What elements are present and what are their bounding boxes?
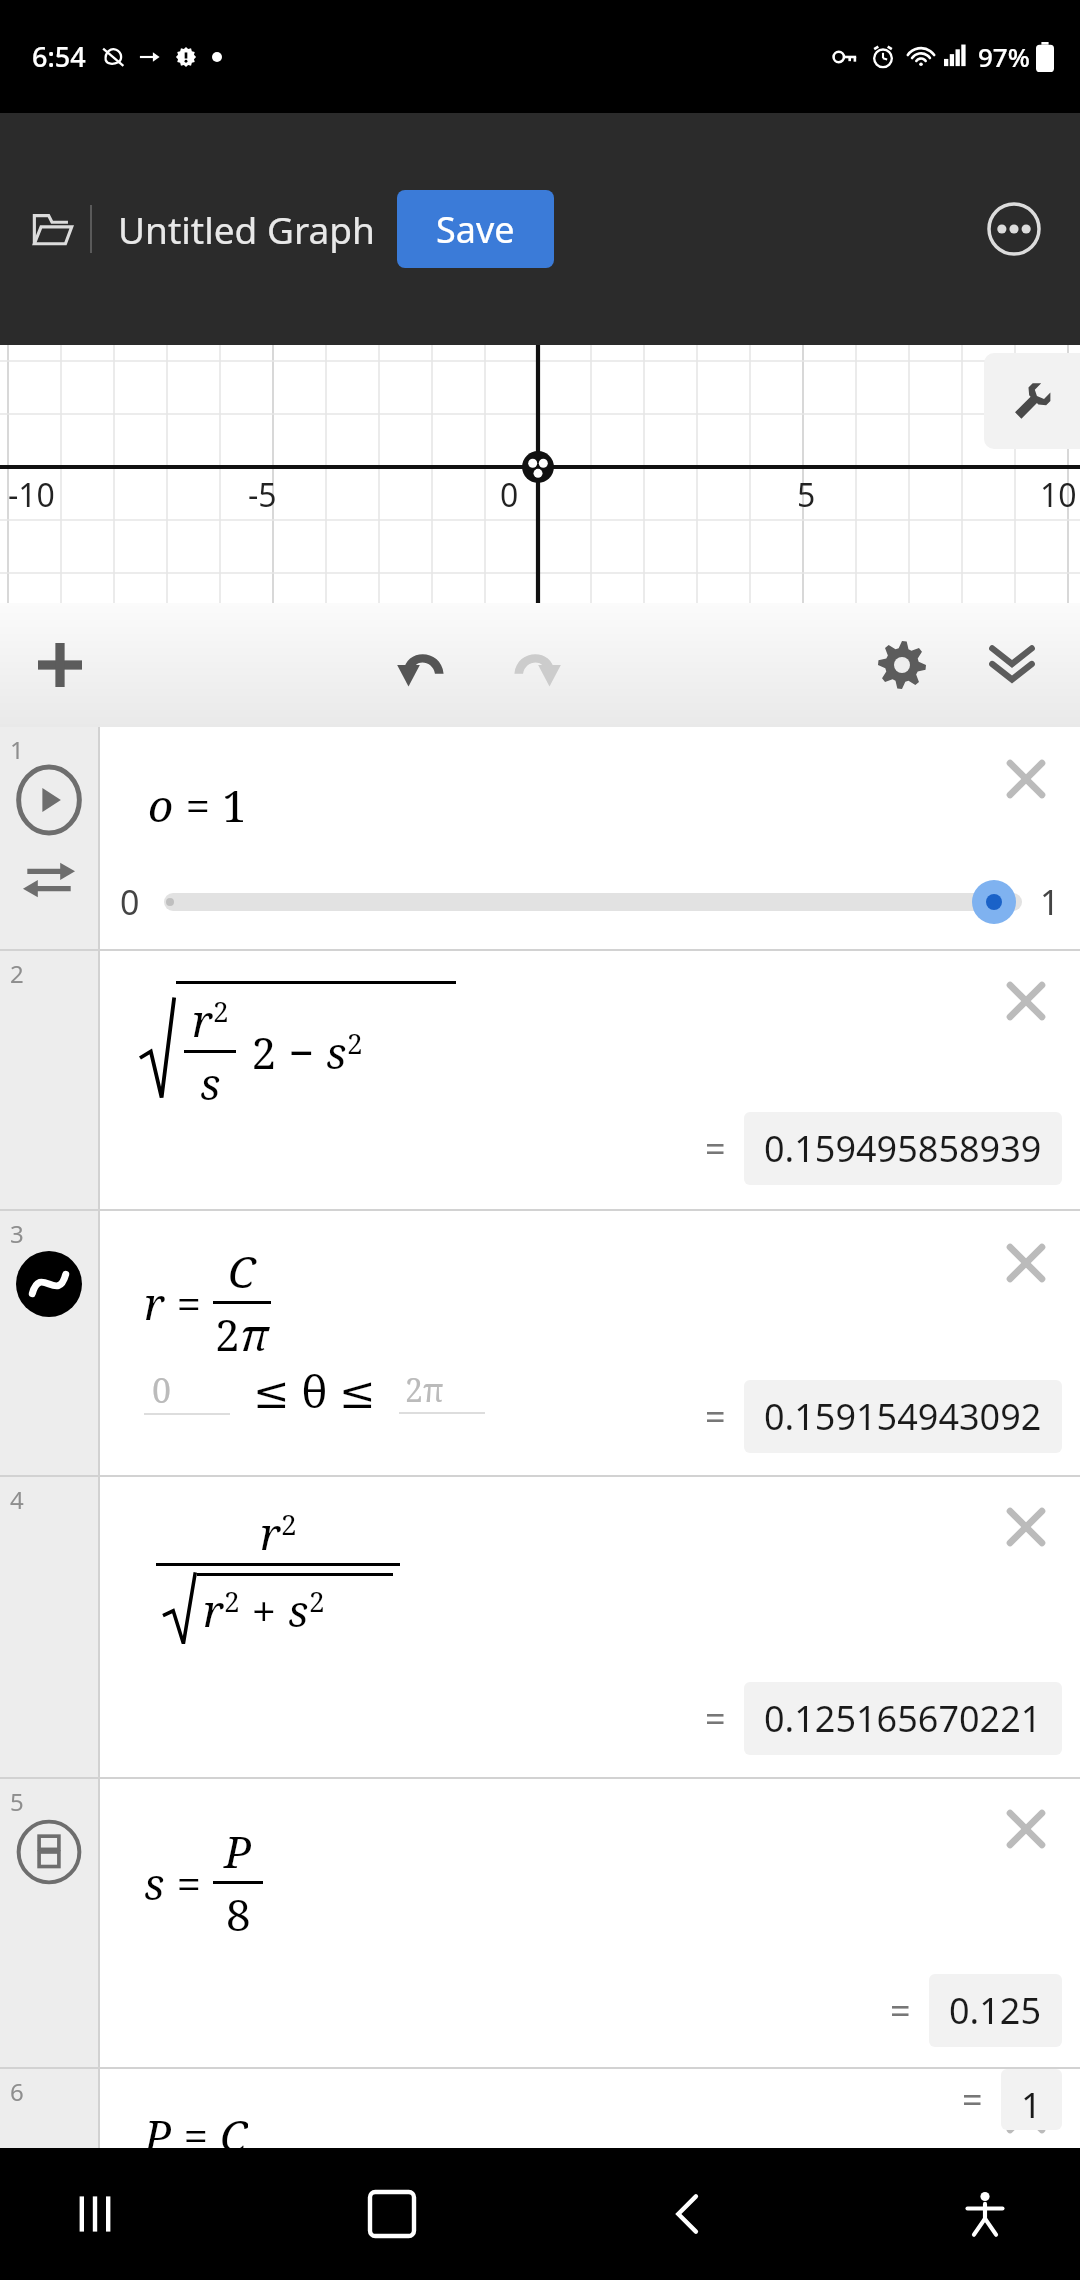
staticText: 0.125 [949,1986,1042,2035]
button[interactable]: Loop mode [18,849,80,911]
staticText: 0.125165670221 [764,1694,1042,1743]
button[interactable]: 0.125 [949,1986,1042,2035]
staticText: 1 [1040,879,1060,925]
button[interactable]: Home [337,2159,447,2269]
button[interactable]: Play animation [16,767,82,833]
staticText: 2π [405,1368,444,1412]
staticText: 2 [213,992,229,1030]
staticText: r [203,1580,224,1640]
staticText: 5 [797,473,816,517]
staticText: 10 [1040,473,1077,517]
button[interactable]: Delete expression [986,739,1066,819]
button[interactable]: Delete expression [986,1487,1066,1567]
button[interactable]: 3 [0,1211,1080,1475]
button[interactable]: Show graph [16,1251,82,1317]
staticText: 8 [226,1884,251,1944]
button[interactable]: 1 [0,727,1080,949]
staticText: 0 [120,879,140,925]
staticText: C [220,2105,248,2148]
staticText: 0 [152,1367,172,1413]
staticText: 2 [309,1582,325,1620]
button[interactable] [972,880,1016,924]
button[interactable]: Open folder [14,191,90,267]
staticText: 2 [215,1304,240,1364]
staticText: = [705,1392,726,1441]
staticText: 2 [281,1505,297,1543]
button[interactable]: Delete expression [986,1223,1066,1303]
button[interactable]: 0.125165670221 [764,1694,1042,1743]
staticText: π [240,1304,269,1364]
button[interactable]: Accessibility [930,2159,1040,2269]
button[interactable]: Delete expression [986,1789,1066,1869]
staticText: s [288,1580,309,1640]
staticText: 1 [222,775,247,835]
button[interactable]: Undo [376,619,468,711]
button[interactable]: 0.159154943092 [764,1392,1042,1441]
staticText: C [228,1241,256,1301]
button[interactable]: Graph settings [984,353,1080,449]
staticText: s [144,1853,165,1913]
staticText: 0 [500,473,519,517]
button[interactable]: Collapse [966,619,1058,711]
staticText: 1 [10,733,24,766]
staticText: -5 [248,473,277,517]
staticText: -10 [8,473,55,517]
staticText: + [240,1580,288,1640]
button[interactable]: Add expression [18,623,102,707]
staticText: P [224,1821,252,1881]
button[interactable]: 0.159495858939 [764,1124,1042,1173]
staticText: r [260,1503,281,1563]
staticText: 0.159154943092 [764,1392,1042,1441]
button[interactable]: More options [976,191,1052,267]
staticText: 2 [10,957,24,990]
button[interactable]: 6 [0,2069,1080,2148]
button[interactable]: 1 [1021,2081,1042,2118]
staticText: Untitled Graph [118,204,375,254]
button[interactable]: Delete expression [986,2079,1066,2148]
staticText: 2 [240,1022,277,1082]
staticText: = [165,1273,213,1333]
staticText: = [165,1853,213,1913]
button[interactable]: Recent apps [40,2159,150,2269]
staticText: = [705,1694,726,1743]
staticText: − [277,1022,326,1082]
staticText: 6:54 [32,38,86,75]
staticText: ≤ θ ≤ [230,1361,399,1421]
staticText: Save [436,205,515,254]
staticText: 3 [10,1217,24,1250]
staticText: 2 [224,1582,240,1620]
staticText: 4 [10,1483,24,1516]
staticText: 0.159495858939 [764,1124,1042,1173]
staticText: 5 [10,1785,24,1818]
staticText: = [705,1124,726,1173]
staticText: o [148,775,174,835]
button[interactable]: Save [397,190,554,268]
staticText: P [144,2105,172,2148]
staticText: r [144,1273,165,1333]
staticText: = [962,2075,983,2124]
staticText: s [200,1053,221,1113]
staticText: s [326,1022,347,1082]
staticText: = [172,2105,220,2148]
button[interactable]: Settings [856,619,948,711]
staticText: 97% [978,39,1030,74]
button[interactable]: 4 [0,1477,1080,1777]
staticText: 6 [10,2075,24,2108]
button[interactable]: Back [633,2159,743,2269]
staticText: = [890,1986,911,2035]
button[interactable]: 2 [0,951,1080,1209]
staticText: r [192,990,213,1050]
button[interactable]: Delete expression [986,961,1066,1041]
staticText: = [174,775,222,835]
button[interactable]: Redo [490,619,582,711]
staticText: 2 [347,1024,363,1062]
staticText: 1 [1021,2081,1042,2118]
button[interactable]: Table [16,1819,82,1885]
button[interactable]: 5 [0,1779,1080,2067]
